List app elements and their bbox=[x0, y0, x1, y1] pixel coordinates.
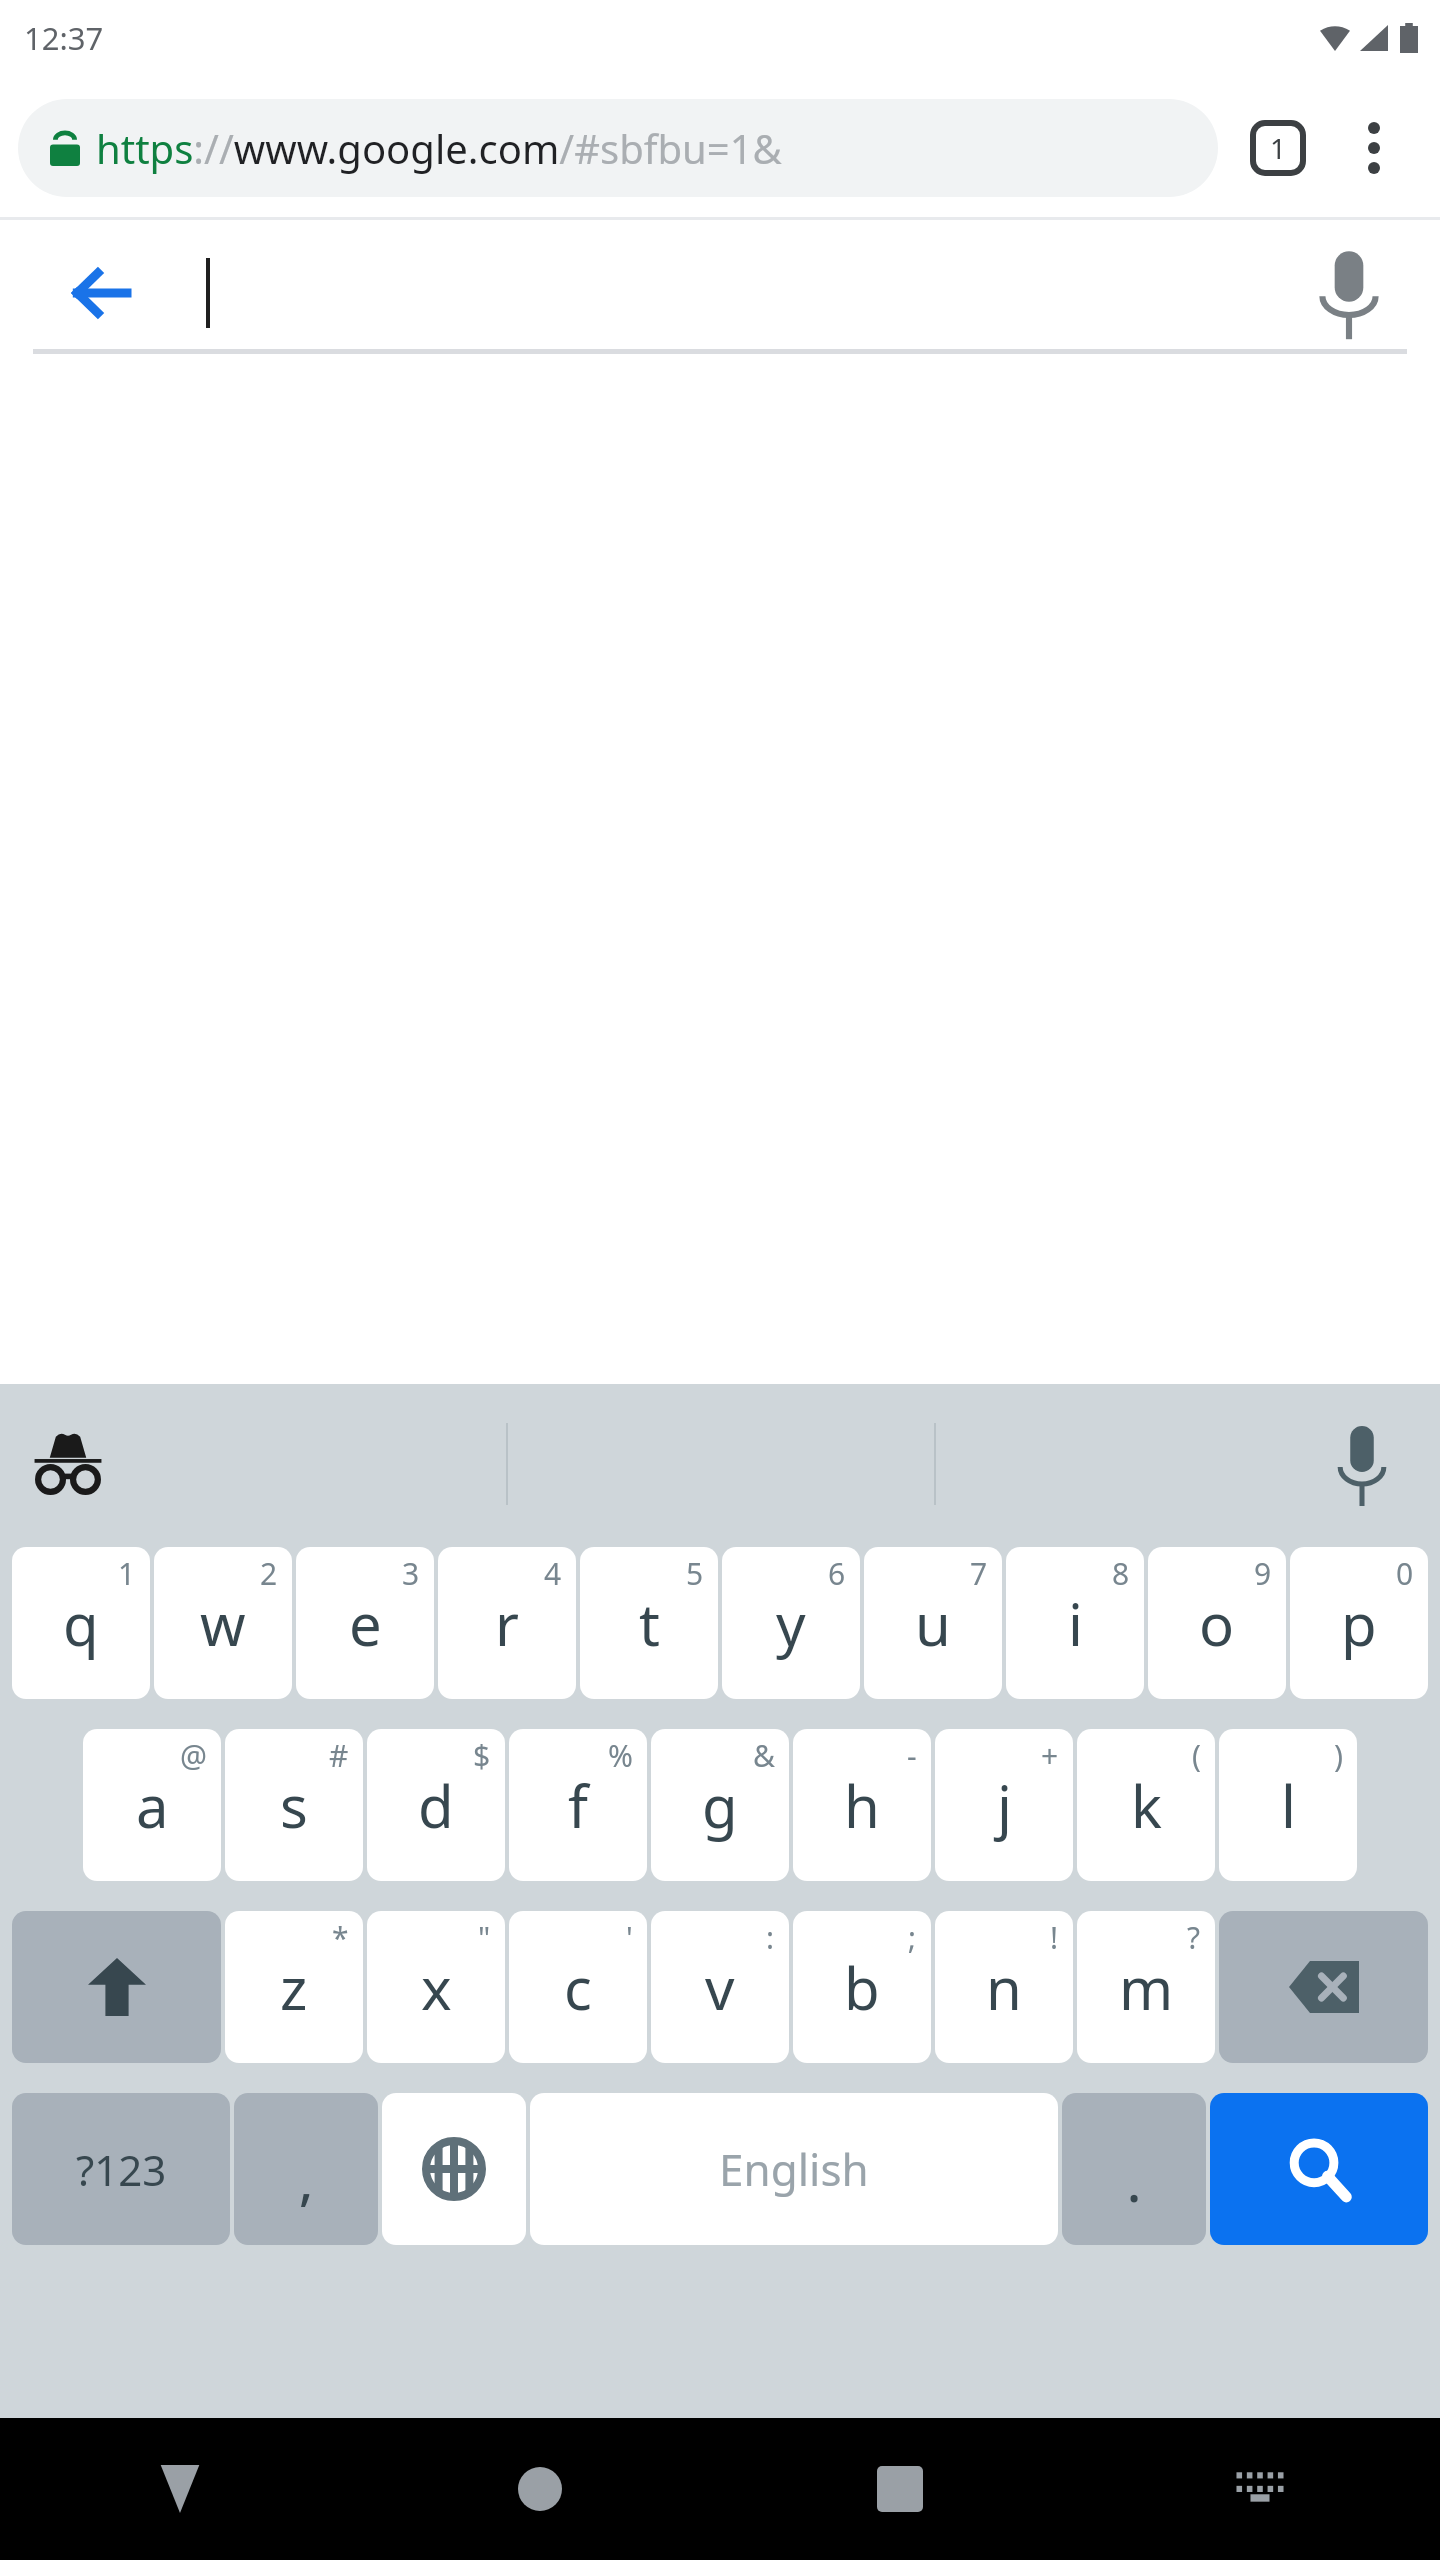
staticText: : bbox=[766, 1917, 775, 1958]
staticText: p bbox=[1341, 1584, 1377, 1663]
button[interactable]: Tabs bbox=[1230, 100, 1326, 196]
button[interactable]: z bbox=[225, 1911, 363, 2063]
button[interactable]: b bbox=[793, 1911, 931, 2063]
button[interactable]: u bbox=[864, 1547, 1002, 1699]
button[interactable]: ?123 bbox=[12, 2093, 230, 2245]
staticText: f bbox=[568, 1766, 588, 1845]
staticText: 1 bbox=[118, 1553, 136, 1594]
staticText: r bbox=[495, 1584, 519, 1663]
staticText: h bbox=[844, 1766, 880, 1845]
staticText: x bbox=[421, 1948, 452, 2027]
staticText: g bbox=[702, 1766, 738, 1845]
staticText: j bbox=[997, 1766, 1012, 1845]
staticText: + bbox=[1041, 1735, 1059, 1776]
staticText: b bbox=[844, 1948, 880, 2027]
button[interactable]: l bbox=[1219, 1729, 1357, 1881]
staticText: e bbox=[349, 1584, 382, 1663]
button[interactable]: f bbox=[509, 1729, 647, 1881]
staticText: ? bbox=[1187, 1917, 1201, 1958]
button[interactable]: , bbox=[234, 2093, 378, 2245]
staticText: English bbox=[719, 2139, 869, 2199]
button[interactable]: o bbox=[1148, 1547, 1286, 1699]
button[interactable]: i bbox=[1006, 1547, 1144, 1699]
staticText: c bbox=[564, 1948, 592, 2027]
staticText: ?123 bbox=[76, 2141, 167, 2198]
staticText: * bbox=[332, 1917, 349, 1958]
staticText: k bbox=[1131, 1766, 1162, 1845]
staticText: . bbox=[1127, 2146, 1142, 2217]
staticText: 6 bbox=[828, 1553, 846, 1594]
staticText: 4 bbox=[544, 1553, 562, 1594]
button[interactable]: Incognito bbox=[18, 1414, 118, 1514]
button[interactable]: More options bbox=[1326, 100, 1422, 196]
button[interactable]: s bbox=[225, 1729, 363, 1881]
button[interactable]: v bbox=[651, 1911, 789, 2063]
button[interactable]: r bbox=[438, 1547, 576, 1699]
button[interactable]: Shift bbox=[12, 1911, 221, 2063]
staticText: z bbox=[280, 1948, 308, 2027]
staticText: n bbox=[986, 1948, 1022, 2027]
button[interactable]: y bbox=[722, 1547, 860, 1699]
staticText: v bbox=[705, 1948, 735, 2027]
button[interactable]: English bbox=[530, 2093, 1058, 2245]
staticText: $ bbox=[473, 1735, 491, 1776]
staticText: @ bbox=[180, 1735, 207, 1776]
button[interactable]: p bbox=[1290, 1547, 1428, 1699]
button[interactable]: q bbox=[12, 1547, 150, 1699]
button[interactable]: Home bbox=[360, 2418, 720, 2560]
staticText: y bbox=[776, 1584, 806, 1663]
staticText: , bbox=[299, 2144, 314, 2215]
staticText: ) bbox=[1334, 1735, 1343, 1776]
staticText: " bbox=[478, 1917, 491, 1958]
button[interactable]: Change language bbox=[382, 2093, 526, 2245]
staticText: 12:37 bbox=[24, 17, 104, 59]
staticText: & bbox=[753, 1735, 775, 1776]
staticText: # bbox=[329, 1735, 349, 1776]
button[interactable]: j bbox=[935, 1729, 1073, 1881]
button[interactable]: m bbox=[1077, 1911, 1215, 2063]
staticText: d bbox=[418, 1766, 454, 1845]
button[interactable]: g bbox=[651, 1729, 789, 1881]
button[interactable]: w bbox=[154, 1547, 292, 1699]
button[interactable]: x bbox=[367, 1911, 505, 2063]
staticText: ! bbox=[1050, 1917, 1059, 1958]
staticText: a bbox=[136, 1766, 169, 1845]
staticText: s bbox=[280, 1766, 308, 1845]
button[interactable]: k bbox=[1077, 1729, 1215, 1881]
staticText: ' bbox=[626, 1917, 633, 1958]
button[interactable]: d bbox=[367, 1729, 505, 1881]
button[interactable]: t bbox=[580, 1547, 718, 1699]
button[interactable]: Voice input bbox=[1312, 1414, 1412, 1514]
staticText: 2 bbox=[260, 1553, 278, 1594]
staticText: 1 bbox=[1270, 129, 1287, 167]
staticText: 8 bbox=[1112, 1553, 1130, 1594]
staticText: % bbox=[608, 1735, 633, 1776]
button[interactable]: Backspace bbox=[1219, 1911, 1428, 2063]
button[interactable]: e bbox=[296, 1547, 434, 1699]
staticText: u bbox=[915, 1584, 951, 1663]
button[interactable]: n bbox=[935, 1911, 1073, 2063]
button[interactable]: h bbox=[793, 1729, 931, 1881]
staticText: 9 bbox=[1254, 1553, 1272, 1594]
button[interactable]: Voice search bbox=[1294, 238, 1404, 348]
button[interactable]: a bbox=[83, 1729, 221, 1881]
staticText: 0 bbox=[1396, 1553, 1414, 1594]
staticText: 3 bbox=[402, 1553, 420, 1594]
staticText: t bbox=[639, 1584, 660, 1663]
button[interactable]: https://www.google.com/#sbfbu=1& bbox=[18, 99, 1218, 197]
button[interactable]: Back bbox=[40, 233, 160, 353]
staticText: 7 bbox=[970, 1553, 988, 1594]
button[interactable]: Recent apps bbox=[720, 2418, 1080, 2560]
button[interactable]: Hide keyboard bbox=[1080, 2418, 1440, 2560]
staticText: i bbox=[1068, 1584, 1083, 1663]
staticText: https://www.google.com/#sbfbu=1& bbox=[96, 121, 782, 175]
staticText: 5 bbox=[686, 1553, 704, 1594]
staticText: ( bbox=[1192, 1735, 1201, 1776]
button[interactable]: . bbox=[1062, 2093, 1206, 2245]
button[interactable]: c bbox=[509, 1911, 647, 2063]
staticText: l bbox=[1281, 1766, 1296, 1845]
button[interactable]: Back bbox=[0, 2418, 360, 2560]
staticText: q bbox=[63, 1584, 99, 1663]
button[interactable]: Search bbox=[1210, 2093, 1428, 2245]
staticText: o bbox=[1199, 1584, 1235, 1663]
